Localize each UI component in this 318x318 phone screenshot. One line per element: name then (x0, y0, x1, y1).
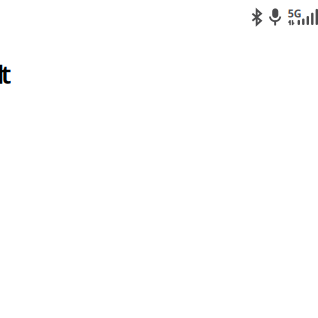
staticText: lt (0, 57, 11, 91)
staticText: 5G (288, 6, 302, 21)
